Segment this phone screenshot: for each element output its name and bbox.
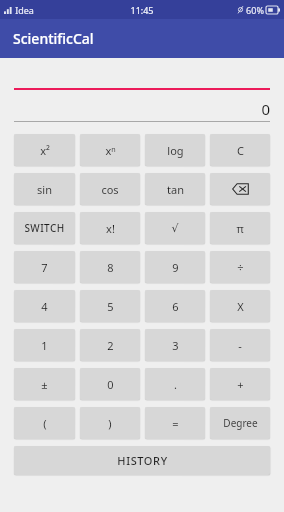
staticText: = — [172, 416, 179, 431]
staticText: + — [237, 377, 244, 392]
staticText: X — [237, 299, 244, 314]
button[interactable]: ± — [14, 368, 75, 400]
button[interactable]: cos — [80, 173, 140, 205]
button[interactable]: SWITCH — [14, 212, 75, 244]
staticText: ± — [41, 377, 48, 392]
button[interactable]: Backspace — [210, 173, 270, 205]
staticText: C — [237, 143, 244, 158]
button[interactable]: 3 — [145, 329, 205, 361]
staticText: . — [174, 377, 177, 392]
button[interactable]: 6 — [145, 290, 205, 322]
button[interactable]: 1 — [14, 329, 75, 361]
staticText: π — [236, 221, 244, 236]
staticText: SWITCH — [24, 221, 65, 235]
staticText: 3 — [172, 338, 179, 353]
button[interactable]: = — [145, 407, 205, 439]
button[interactable]: ) — [80, 407, 140, 439]
staticText: tan — [167, 182, 184, 197]
staticText: 2 — [107, 338, 114, 353]
button[interactable]: √ — [145, 212, 205, 244]
button[interactable]: 4 — [14, 290, 75, 322]
button[interactable]: ( — [14, 407, 75, 439]
staticText: 9 — [172, 260, 179, 275]
staticText: 7 — [41, 260, 48, 275]
button[interactable]: HISTORY — [14, 446, 270, 475]
button[interactable]: 5 — [80, 290, 140, 322]
staticText: HISTORY — [117, 453, 168, 468]
button[interactable]: 7 — [14, 251, 75, 283]
staticText: sin — [37, 182, 52, 197]
staticText: 11:45 — [130, 4, 154, 16]
button[interactable]: C — [210, 134, 270, 166]
staticText: 6 — [172, 299, 179, 314]
button[interactable]: 9 — [145, 251, 205, 283]
button[interactable]: ÷ — [210, 251, 270, 283]
button[interactable]: π — [210, 212, 270, 244]
staticText: 5 — [107, 299, 114, 314]
button[interactable]: + — [210, 368, 270, 400]
staticText: Degree — [223, 416, 258, 430]
staticText: xⁿ — [105, 143, 116, 158]
staticText: 0 — [107, 377, 114, 392]
button[interactable]: x² — [14, 134, 75, 166]
button[interactable]: 2 — [80, 329, 140, 361]
staticText: 8 — [107, 260, 114, 275]
button[interactable]: - — [210, 329, 270, 361]
button[interactable]: . — [145, 368, 205, 400]
staticText: 0 — [261, 99, 270, 119]
button[interactable]: tan — [145, 173, 205, 205]
button[interactable]: xⁿ — [80, 134, 140, 166]
staticText: 4 — [41, 299, 48, 314]
staticText: x! — [106, 221, 115, 236]
staticText: ( — [43, 416, 47, 431]
staticText: x² — [40, 143, 50, 158]
staticText: ) — [108, 416, 112, 431]
staticText: - — [238, 338, 242, 353]
staticText: 60% — [246, 4, 264, 16]
button[interactable]: X — [210, 290, 270, 322]
staticText: log — [167, 143, 184, 158]
button[interactable]: x! — [80, 212, 140, 244]
staticText: ScientificCal — [13, 29, 94, 48]
button[interactable]: sin — [14, 173, 75, 205]
staticText: ÷ — [237, 260, 244, 275]
staticText: 1 — [41, 338, 48, 353]
staticText: √ — [171, 222, 179, 235]
button[interactable]: Degree — [210, 407, 270, 439]
button[interactable]: log — [145, 134, 205, 166]
staticText: cos — [101, 182, 119, 197]
staticText: Idea — [15, 4, 34, 16]
button[interactable]: 0 — [80, 368, 140, 400]
button[interactable]: 8 — [80, 251, 140, 283]
